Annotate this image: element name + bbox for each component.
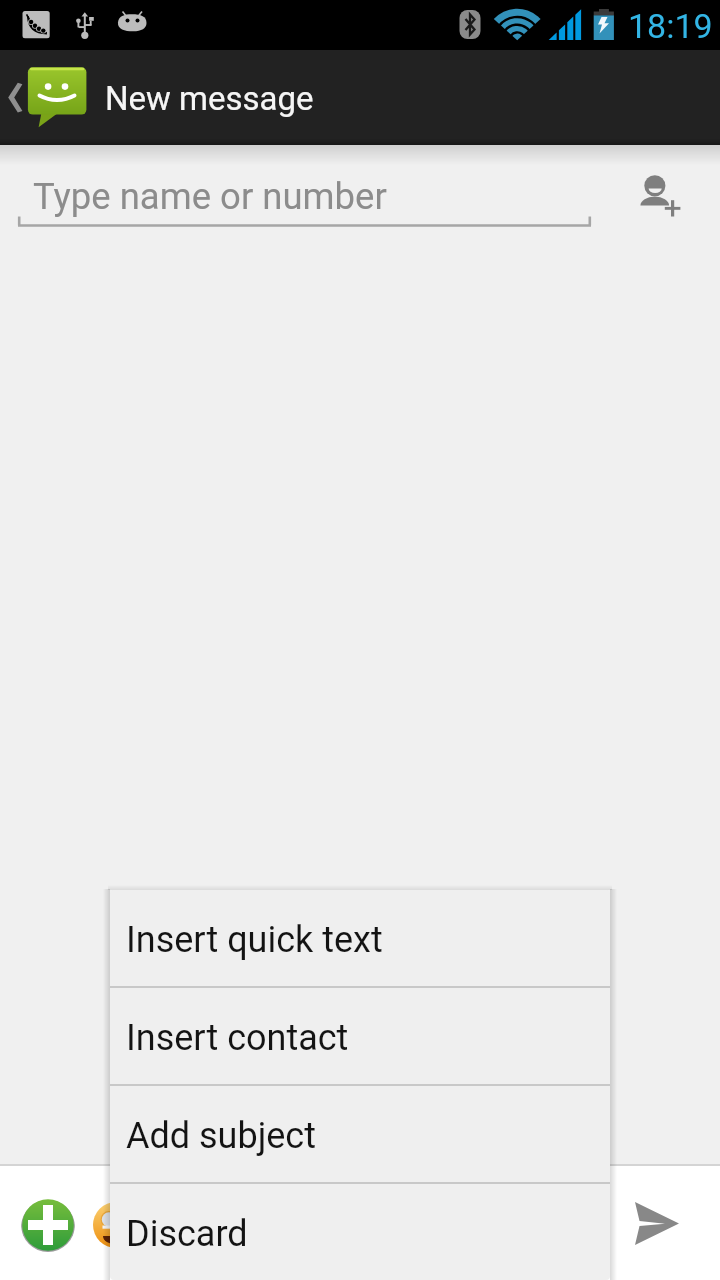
button[interactable]: Insert contact bbox=[110, 988, 610, 1084]
staticText: Add subject bbox=[126, 1115, 316, 1157]
button[interactable]: Add attachment bbox=[21, 1198, 75, 1252]
button[interactable]: Insert emoji bbox=[93, 1202, 139, 1248]
button[interactable]: Add recipient from contacts bbox=[614, 148, 710, 228]
staticText: Insert contact bbox=[126, 1017, 349, 1059]
staticText: 18:19 bbox=[628, 6, 713, 46]
staticText: New message bbox=[105, 79, 314, 118]
staticText: Discard bbox=[126, 1213, 248, 1255]
button[interactable]: Insert quick text bbox=[110, 890, 610, 986]
button[interactable]: Add subject bbox=[110, 1086, 610, 1182]
button[interactable]: Navigate up bbox=[0, 50, 720, 145]
button[interactable]: Discard bbox=[110, 1184, 610, 1280]
staticText: Insert quick text bbox=[126, 919, 383, 961]
button[interactable]: Send message bbox=[610, 1166, 720, 1280]
staticText: Type name or number bbox=[33, 175, 387, 218]
